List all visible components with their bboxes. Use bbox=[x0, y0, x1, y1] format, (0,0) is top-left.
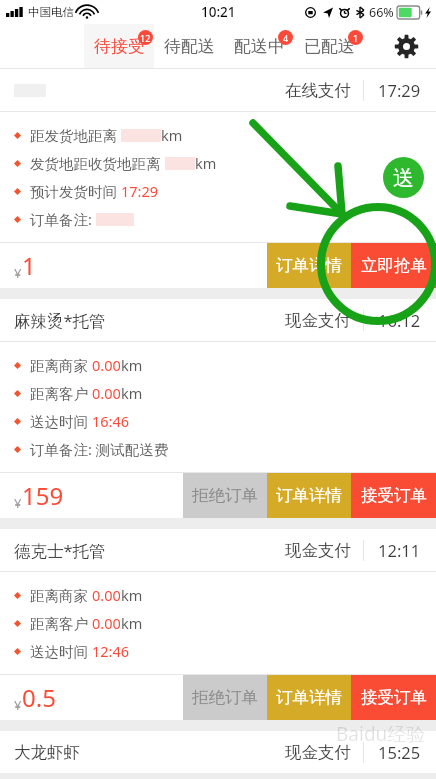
button[interactable]: 配送中 bbox=[224, 24, 294, 68]
staticText: 麻辣烫*托管 bbox=[14, 309, 106, 332]
staticText: 距离客户 bbox=[30, 383, 92, 403]
staticText: ¥ bbox=[14, 696, 22, 714]
button[interactable]: 拒绝订单 bbox=[183, 675, 267, 720]
staticText: 预计发货时间 bbox=[30, 181, 121, 201]
staticText: 接受订单 bbox=[361, 485, 427, 506]
staticText: 66% bbox=[369, 4, 394, 21]
staticText: 待配送 bbox=[164, 36, 215, 57]
button[interactable]: 麻辣烫*托管 bbox=[0, 299, 436, 341]
button[interactable]: 订单详情 bbox=[267, 473, 351, 518]
staticText: 订单详情 bbox=[276, 255, 342, 276]
button[interactable]: 立即抢单 bbox=[351, 243, 436, 288]
staticText: 待接受 bbox=[94, 36, 145, 57]
staticText: 拒绝订单 bbox=[192, 687, 258, 708]
staticText: 159 bbox=[22, 479, 64, 512]
button[interactable]: 大龙虾虾 bbox=[0, 731, 436, 773]
staticText: 距离客户 bbox=[30, 613, 92, 633]
staticText: km bbox=[121, 613, 143, 633]
staticText: 1 bbox=[353, 32, 359, 44]
staticText: 中国电信 bbox=[28, 5, 74, 19]
staticText: 距离商家 bbox=[30, 585, 92, 605]
staticText: 0.00 bbox=[92, 585, 121, 605]
staticText: 送达时间 bbox=[30, 411, 92, 431]
staticText: 大龙虾虾 bbox=[14, 742, 80, 763]
staticText: km bbox=[121, 383, 143, 403]
staticText: 16:46 bbox=[92, 411, 130, 431]
staticText: 订单详情 bbox=[276, 485, 342, 506]
staticText: 0.00 bbox=[92, 613, 121, 633]
staticText: 发货地距收货地距离 bbox=[30, 153, 165, 173]
staticText: 0.00 bbox=[92, 355, 121, 375]
staticText: km bbox=[195, 153, 217, 173]
staticText: 现金支付 bbox=[285, 742, 351, 763]
staticText: 1 bbox=[22, 249, 36, 282]
button[interactable]: 在线支付 bbox=[0, 69, 436, 111]
staticText: 16:12 bbox=[378, 309, 421, 331]
button[interactable]: 接受订单 bbox=[351, 473, 436, 518]
staticText: km bbox=[161, 125, 183, 145]
staticText: 15:25 bbox=[378, 741, 421, 763]
staticText: 17:29 bbox=[378, 79, 421, 101]
button[interactable]: 订单详情 bbox=[267, 243, 351, 288]
staticText: Baidu经验 bbox=[336, 721, 426, 747]
staticText: 距发货地距离 bbox=[30, 125, 121, 145]
staticText: 送达时间 bbox=[30, 641, 92, 661]
staticText: ¥ bbox=[14, 494, 22, 512]
staticText: 送 bbox=[393, 165, 414, 191]
button[interactable]: 订单详情 bbox=[267, 675, 351, 720]
staticText: 现金支付 bbox=[285, 540, 351, 561]
staticText: 订单详情 bbox=[276, 687, 342, 708]
button[interactable]: 接受订单 bbox=[351, 675, 436, 720]
button[interactable]: 待配送 bbox=[154, 24, 224, 68]
staticText: 配送中 bbox=[234, 36, 285, 57]
button[interactable]: Deliver bbox=[383, 157, 424, 198]
staticText: 订单备注: bbox=[30, 209, 96, 229]
button[interactable]: 已配送 bbox=[294, 24, 364, 68]
staticText: ¥ bbox=[14, 264, 22, 282]
staticText: 0.5 bbox=[22, 681, 56, 714]
staticText: 订单备注: 测试配送费 bbox=[30, 439, 169, 459]
staticText: km bbox=[121, 585, 143, 605]
staticText: 12:46 bbox=[92, 641, 130, 661]
staticText: 距离商家 bbox=[30, 355, 92, 375]
staticText: 拒绝订单 bbox=[192, 485, 258, 506]
staticText: 在线支付 bbox=[285, 80, 351, 101]
staticText: 12 bbox=[140, 32, 151, 44]
staticText: 12:11 bbox=[378, 539, 421, 561]
staticText: 4 bbox=[283, 32, 289, 44]
staticText: 已配送 bbox=[304, 36, 355, 57]
staticText: 现金支付 bbox=[285, 310, 351, 331]
staticText: km bbox=[121, 355, 143, 375]
staticText: 立即抢单 bbox=[361, 255, 427, 276]
staticText: 德克士*托管 bbox=[14, 539, 106, 562]
button[interactable]: 待接受 bbox=[84, 24, 154, 68]
button[interactable]: Settings bbox=[388, 28, 424, 64]
staticText: 0.00 bbox=[92, 383, 121, 403]
button[interactable]: 拒绝订单 bbox=[183, 473, 267, 518]
button[interactable]: 德克士*托管 bbox=[0, 529, 436, 571]
staticText: 10:21 bbox=[201, 3, 236, 21]
staticText: 接受订单 bbox=[361, 687, 427, 708]
staticText: 17:29 bbox=[121, 181, 159, 201]
